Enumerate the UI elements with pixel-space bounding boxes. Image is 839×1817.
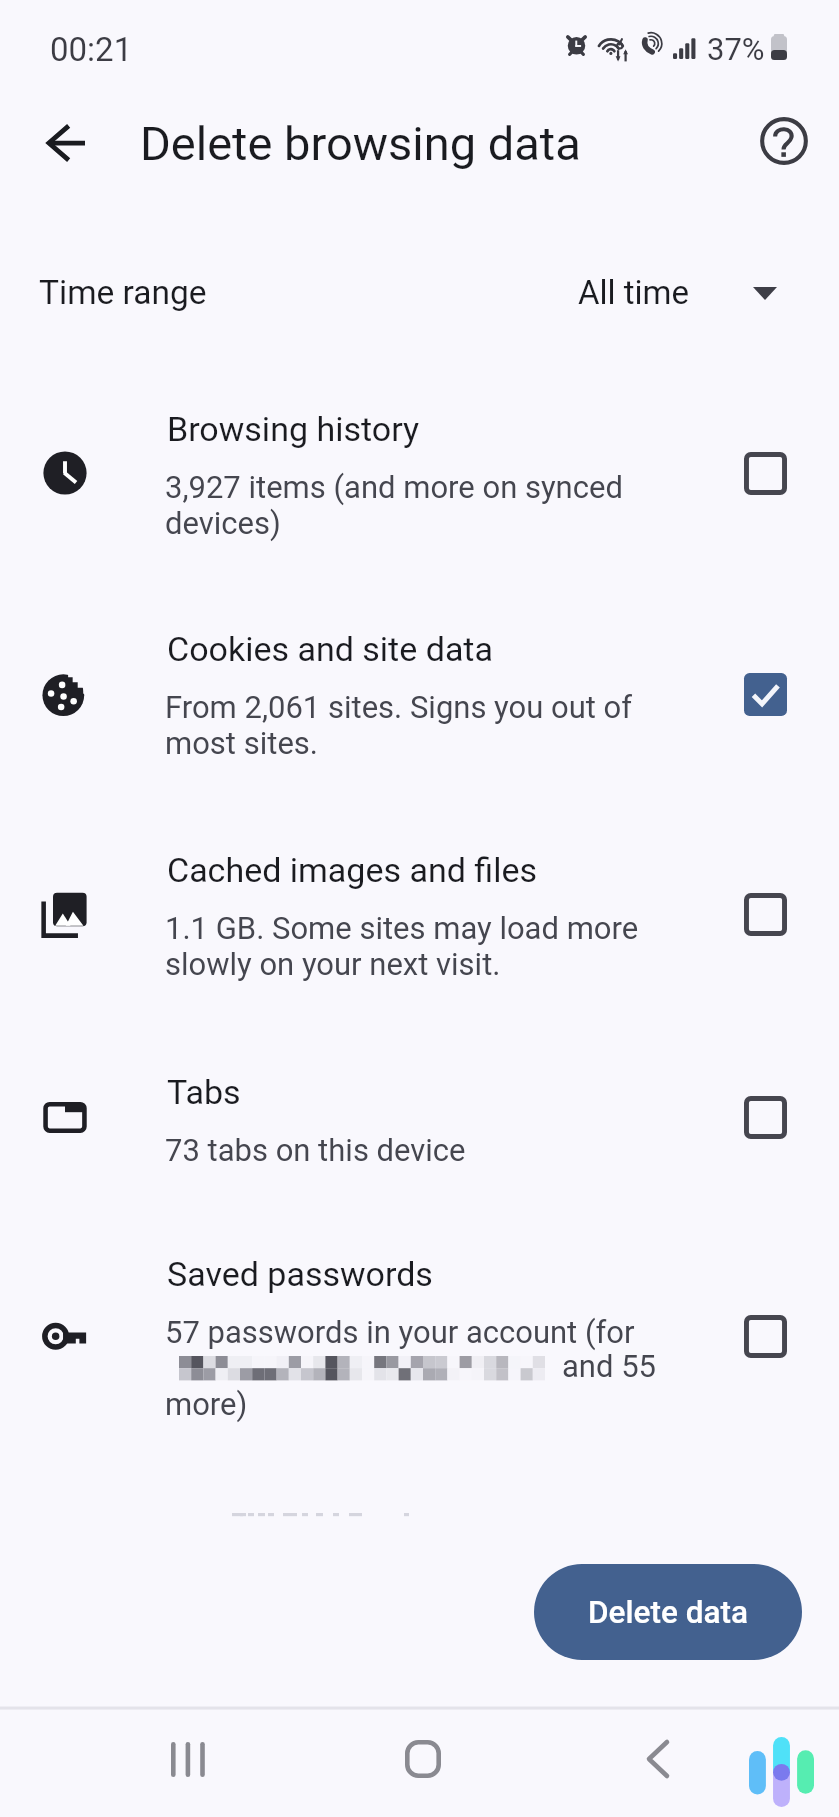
staticText: slowly on your next visit.: [165, 946, 501, 982]
staticText: 37%: [707, 31, 765, 67]
button[interactable]: Back: [28, 106, 102, 180]
button[interactable]: Media: [735, 1727, 829, 1817]
staticText: Browsing history: [167, 409, 420, 449]
staticText: 73 tabs on this device: [165, 1132, 466, 1168]
staticText: From 2,061 sites. Signs you out of: [165, 689, 633, 725]
button[interactable]: Delete data: [534, 1564, 802, 1660]
staticText: Tabs: [167, 1072, 241, 1112]
staticText: more): [165, 1386, 248, 1422]
staticText: and 55: [562, 1348, 656, 1384]
button[interactable]: Back: [619, 1720, 697, 1798]
button[interactable]: Tabs: [0, 1056, 839, 1180]
staticText: All time: [578, 273, 690, 312]
button[interactable]: Browsing history checkbox: [735, 443, 795, 503]
button[interactable]: Cached images and files: [0, 834, 839, 992]
staticText: 57 passwords in your account (for: [165, 1314, 635, 1350]
button[interactable]: Cached images and files checkbox: [735, 884, 795, 944]
staticText: Delete browsing data: [140, 116, 581, 171]
staticText: Cached images and files: [167, 850, 538, 890]
staticText: Cookies and site data: [167, 629, 493, 669]
button[interactable]: Time range: [0, 243, 839, 343]
staticText: 00:21: [50, 30, 133, 69]
staticText: Time range: [39, 273, 207, 312]
staticText: 3,927 items (and more on synced: [165, 469, 623, 505]
button[interactable]: Saved passwords: [0, 1238, 839, 1430]
staticText: most sites.: [165, 725, 318, 761]
staticText: Saved passwords: [167, 1254, 433, 1294]
button[interactable]: Browsing history: [0, 393, 839, 551]
button[interactable]: Cookies and site data checkbox: [735, 664, 795, 724]
staticText: 1.1 GB. Some sites may load more: [165, 910, 639, 946]
button[interactable]: Cookies and site data: [0, 613, 839, 771]
button[interactable]: Help: [742, 101, 824, 183]
button[interactable]: Recent apps: [149, 1720, 227, 1798]
staticText: devices): [165, 505, 281, 541]
staticText: Delete data: [588, 1594, 749, 1631]
button[interactable]: Tabs checkbox: [735, 1087, 795, 1147]
button[interactable]: Saved passwords checkbox: [735, 1306, 795, 1366]
button[interactable]: Home: [384, 1720, 462, 1798]
